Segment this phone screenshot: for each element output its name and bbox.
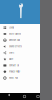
button[interactable]: More Games [0, 31, 40, 37]
staticText: Contact Us [9, 64, 19, 67]
staticText: Share [9, 52, 14, 54]
staticText: Remove Ads [9, 39, 20, 41]
button[interactable]: Contact Us [0, 62, 40, 69]
button[interactable]: Back [7, 93, 14, 100]
staticText: Levels [9, 26, 14, 29]
staticText: More Games [9, 33, 21, 35]
staticText: Reset Ads [9, 77, 18, 79]
button[interactable]: Reset Ads [0, 75, 40, 81]
button[interactable]: Rate [0, 56, 40, 62]
staticText: Privacy Policy [9, 70, 20, 73]
button[interactable]: Home [21, 93, 28, 100]
button[interactable]: Remove Ads [0, 37, 40, 43]
staticText: Sound Effects [9, 45, 22, 48]
button[interactable]: Levels [0, 24, 40, 31]
button[interactable]: Recent apps [34, 93, 41, 100]
button[interactable]: Share [0, 50, 40, 56]
button[interactable]: Privacy Policy [0, 69, 40, 75]
staticText: Rate [9, 58, 13, 60]
button[interactable]: Sound Effects [0, 43, 40, 50]
